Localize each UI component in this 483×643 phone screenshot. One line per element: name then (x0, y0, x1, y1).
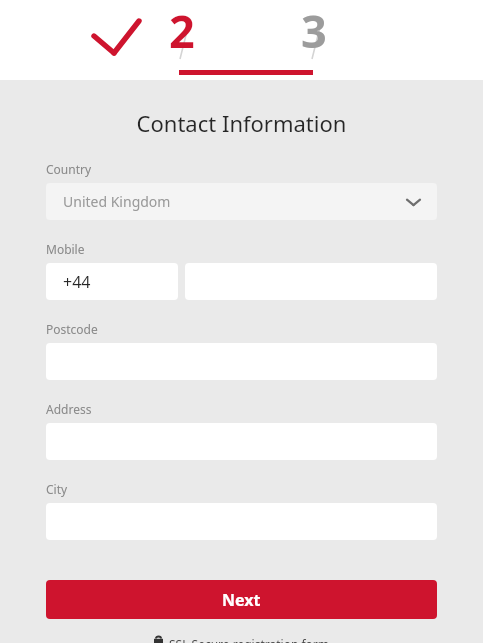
staticText: +44 (63, 271, 91, 293)
staticText: Contact Information (46, 108, 437, 138)
staticText: Postcode (46, 321, 98, 337)
staticText: 2 (169, 0, 195, 59)
staticText: 3 (301, 0, 327, 59)
button[interactable]: 3 (248, 0, 380, 80)
staticText: Next (222, 589, 261, 611)
staticText: United Kingdom (63, 192, 171, 211)
staticText: Country (46, 161, 92, 177)
staticText: SSL Secure registration form (169, 636, 329, 643)
staticText: Mobile (46, 241, 85, 257)
button[interactable]: Step 1 completed (0, 0, 116, 80)
button[interactable]: United Kingdom (46, 183, 437, 220)
staticText: Address (46, 401, 92, 417)
button[interactable]: +44 (46, 263, 178, 300)
button[interactable]: Next (46, 580, 437, 619)
button[interactable]: 2 (116, 0, 248, 80)
staticText: City (46, 481, 68, 497)
